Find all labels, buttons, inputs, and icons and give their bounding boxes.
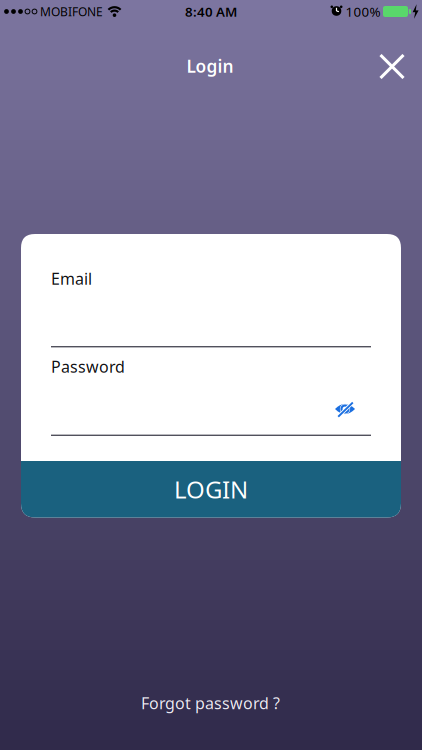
button[interactable] bbox=[332, 396, 358, 422]
button[interactable] bbox=[372, 46, 412, 86]
staticText: Password bbox=[51, 356, 125, 377]
staticText: 8:40 AM bbox=[185, 3, 237, 20]
button[interactable]: Forgot password ? bbox=[141, 692, 280, 714]
button[interactable]: LOGIN bbox=[21, 461, 401, 517]
staticText: Email bbox=[51, 268, 92, 289]
staticText: Forgot password ? bbox=[141, 692, 280, 714]
staticText: LOGIN bbox=[174, 473, 248, 505]
staticText: MOBIFONE bbox=[40, 3, 103, 19]
staticText: 100% bbox=[345, 3, 380, 20]
staticText: Login bbox=[186, 54, 233, 77]
